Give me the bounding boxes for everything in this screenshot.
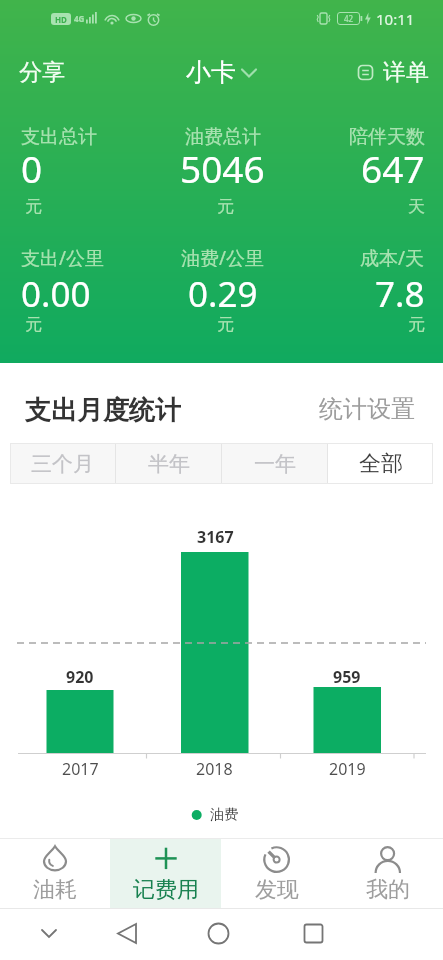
button[interactable]: 一年 [222,443,327,484]
button[interactable]: 分享 [19,58,65,87]
button[interactable]: 全部 [328,443,433,484]
staticText: 油费 [210,806,238,824]
staticText: 我的 [366,876,410,904]
staticText: 油费总计 [185,125,261,147]
staticText: 一年 [254,451,296,477]
staticText: 统计设置 [319,394,415,424]
staticText: 10:11 [376,9,415,29]
staticText: 油耗 [33,876,77,904]
staticText: 支出月度统计 [25,394,181,424]
staticText: 元 [408,314,425,335]
staticText: 4G [74,13,85,24]
button[interactable]: 记费用 [110,839,221,908]
staticText: 2018 [196,758,233,780]
staticText: 支出/公里 [21,245,105,267]
staticText: HD [55,14,67,25]
staticText: 0 [21,143,43,187]
staticText: 三个月 [31,451,94,477]
staticText: 元 [217,196,234,217]
staticText: 成本/天 [360,245,425,267]
button[interactable]: 我的 [332,839,443,908]
button[interactable]: 小卡 [186,57,258,88]
staticText: 42 [344,13,354,24]
staticText: 0.29 [188,270,258,310]
staticText: 半年 [148,451,190,477]
staticText: 0.00 [21,270,91,310]
staticText: 959 [333,666,361,688]
staticText: 天 [408,196,425,217]
staticText: 3167 [197,526,234,548]
button[interactable]: 油耗 [0,839,110,908]
staticText: 2017 [62,758,99,780]
staticText: 2019 [329,758,366,780]
staticText: 7.8 [375,270,425,310]
staticText: 647 [361,143,425,187]
button[interactable]: 统计设置 [319,394,415,424]
staticText: 详单 [383,58,429,87]
staticText: 记费用 [133,876,199,904]
staticText: 发现 [255,876,299,904]
button[interactable]: 发现 [221,839,332,908]
staticText: 油费/公里 [181,245,265,267]
staticText: 元 [25,314,42,335]
staticText: 5046 [180,143,265,187]
staticText: 元 [217,314,234,335]
staticText: 分享 [19,58,65,87]
staticText: 920 [66,666,94,688]
staticText: 陪伴天数 [349,125,425,147]
staticText: 元 [25,196,42,217]
staticText: 支出总计 [21,125,97,147]
staticText: 小卡 [186,57,236,88]
button[interactable]: 半年 [116,443,221,484]
button[interactable]: 三个月 [10,443,115,484]
staticText: 全部 [359,450,403,478]
button[interactable]: 详单 [357,58,429,87]
